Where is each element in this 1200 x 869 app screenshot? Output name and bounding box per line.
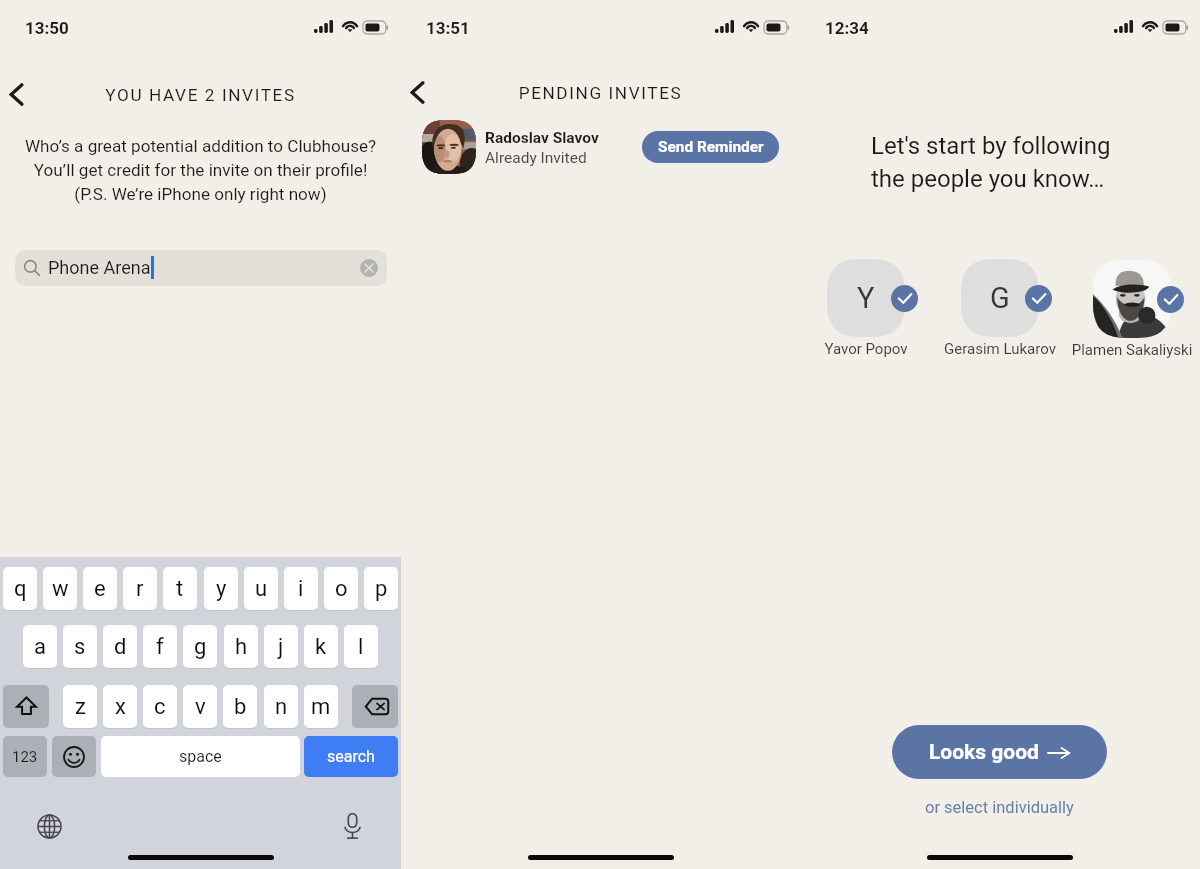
staticText: x (115, 694, 126, 720)
staticText: t (176, 576, 184, 602)
staticText: PENDING INVITES (401, 83, 800, 103)
button[interactable]: z (63, 685, 97, 728)
button[interactable]: o (324, 567, 358, 610)
button[interactable]: space (101, 736, 300, 777)
staticText: Yavor Popov (766, 340, 966, 358)
staticText: 123 (12, 748, 38, 766)
button[interactable]: d (103, 625, 137, 668)
staticText: o (335, 576, 348, 602)
button[interactable]: e (83, 567, 117, 610)
button[interactable]: c (143, 685, 177, 728)
button[interactable]: b (223, 685, 257, 728)
staticText: v (195, 694, 206, 720)
staticText: Y (857, 281, 875, 315)
button[interactable]: Phone Arena (15, 250, 387, 286)
button[interactable]: h (224, 625, 258, 668)
staticText: g (194, 634, 207, 660)
staticText: r (136, 576, 144, 602)
staticText: d (114, 634, 127, 660)
staticText: or select individually (925, 798, 1074, 817)
staticText: space (179, 747, 222, 766)
button[interactable]: g (183, 625, 217, 668)
button[interactable]: x (103, 685, 137, 728)
staticText: s (74, 634, 86, 660)
staticText: e (94, 576, 106, 602)
button[interactable]: w (43, 567, 77, 610)
button[interactable]: Clear (360, 259, 378, 277)
staticText: y (216, 576, 227, 602)
staticText: 13:50 (25, 18, 69, 38)
button[interactable]: Back (395, 70, 439, 114)
staticText: q (14, 576, 27, 602)
staticText: Radoslav Slavov (485, 129, 599, 147)
staticText: Plamen Sakaliyski (1032, 341, 1200, 359)
button[interactable]: n (264, 685, 298, 728)
button[interactable]: Switch language (30, 807, 68, 845)
button[interactable]: j (264, 625, 298, 668)
button[interactable]: q (3, 567, 37, 610)
button[interactable]: or select individually (892, 794, 1107, 820)
button[interactable]: Send Reminder (642, 131, 779, 163)
button[interactable]: r (123, 567, 157, 610)
button[interactable] (422, 120, 476, 174)
staticText: search (327, 747, 375, 766)
staticText: 12:34 (825, 18, 869, 38)
staticText: f (156, 634, 164, 660)
staticText: YOU HAVE 2 INVITES (0, 85, 401, 105)
button[interactable]: 123 (3, 736, 47, 777)
staticText: 13:51 (426, 18, 470, 38)
staticText: Looks good (929, 740, 1039, 765)
button[interactable]: Backspace (352, 685, 398, 728)
button[interactable]: search (304, 736, 398, 777)
button[interactable]: Dictate (333, 807, 371, 845)
button[interactable]: p (364, 567, 398, 610)
button[interactable]: Looks good (892, 725, 1107, 779)
staticText: Send Reminder (658, 138, 764, 156)
staticText: n (275, 694, 288, 720)
button[interactable]: a (23, 625, 57, 668)
staticText: Already Invited (485, 149, 587, 167)
button[interactable]: Emoji (52, 736, 96, 777)
button[interactable]: l (344, 625, 378, 668)
staticText: c (154, 694, 166, 720)
button[interactable] (1093, 260, 1171, 338)
button[interactable]: v (183, 685, 217, 728)
button[interactable]: m (304, 685, 338, 728)
staticText: Phone Arena (48, 257, 151, 278)
button[interactable]: Back (0, 72, 38, 116)
staticText: k (315, 634, 327, 660)
button[interactable]: u (244, 567, 278, 610)
button[interactable]: Y (827, 259, 905, 337)
staticText: i (298, 576, 304, 602)
button[interactable]: G (961, 259, 1039, 337)
button[interactable]: i (284, 567, 318, 610)
staticText: h (235, 634, 248, 660)
button[interactable]: Shift (3, 685, 49, 728)
button[interactable]: y (204, 567, 238, 610)
staticText: u (255, 576, 268, 602)
staticText: j (278, 634, 284, 660)
button[interactable]: f (143, 625, 177, 668)
staticText: m (311, 694, 331, 720)
staticText: w (52, 576, 69, 602)
staticText: a (34, 634, 46, 660)
button[interactable]: k (304, 625, 338, 668)
staticText: p (375, 576, 388, 602)
staticText: Gerasim Lukarov (900, 340, 1100, 358)
button[interactable]: t (163, 567, 197, 610)
staticText: l (358, 634, 364, 660)
staticText: Let's start by following the people you … (871, 132, 1111, 193)
staticText: Who’s a great potential addition to Club… (0, 136, 401, 204)
staticText: z (75, 694, 86, 720)
staticText: G (990, 281, 1010, 315)
staticText: b (234, 694, 247, 720)
button[interactable]: s (63, 625, 97, 668)
